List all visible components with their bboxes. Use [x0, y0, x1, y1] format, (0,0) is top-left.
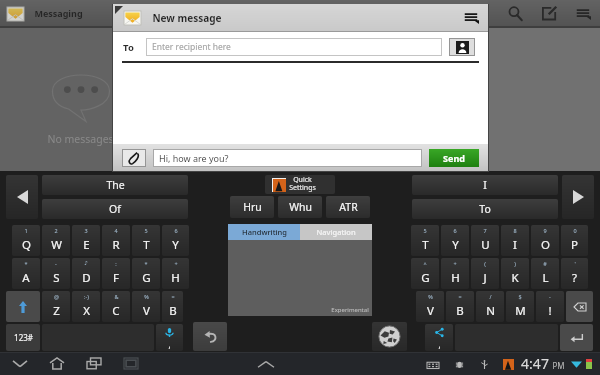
staticText: =: [458, 293, 462, 300]
button[interactable]: Quick: [265, 175, 335, 194]
button[interactable]: Home: [43, 352, 71, 375]
button[interactable]: Attach: [122, 149, 146, 167]
button[interactable]: I: [412, 175, 558, 195]
button[interactable]: ^: [411, 258, 439, 289]
staticText: +: [174, 260, 178, 267]
staticText: H: [451, 270, 460, 286]
button[interactable]: [560, 324, 593, 351]
button[interactable]: 9: [531, 225, 559, 256]
button[interactable]: *: [132, 258, 160, 289]
button[interactable]: Recents: [80, 352, 108, 375]
staticText: A: [22, 270, 30, 286]
staticText: 6: [453, 227, 457, 234]
button[interactable]: ): [501, 258, 529, 289]
staticText: 5: [144, 227, 148, 234]
button[interactable]: /: [476, 291, 504, 322]
staticText: ^: [423, 260, 427, 267]
button[interactable]: 1: [12, 225, 40, 256]
staticText: X: [83, 303, 90, 319]
staticText: D: [82, 270, 91, 286]
staticText: Y: [172, 237, 179, 253]
button[interactable]: Screenshot: [117, 352, 145, 375]
button[interactable]: Navigation: [300, 224, 372, 240]
button[interactable]: :: [102, 258, 130, 289]
staticText: Of: [109, 202, 121, 216]
button[interactable]: New message: [532, 0, 566, 26]
button[interactable]: 2: [42, 225, 70, 256]
button[interactable]: The: [42, 175, 188, 195]
button[interactable]: =: [446, 291, 474, 322]
staticText: +: [453, 260, 457, 267]
button[interactable]: +: [162, 258, 189, 289]
button[interactable]: To: [412, 199, 558, 219]
staticText: R: [112, 237, 120, 253]
button[interactable]: Language: [372, 322, 407, 351]
button[interactable]: 5: [132, 225, 160, 256]
button[interactable]: Undo: [193, 322, 227, 351]
staticText: Send: [443, 152, 465, 164]
button[interactable]: -: [42, 258, 70, 289]
button[interactable]: 6: [441, 225, 469, 256]
button[interactable]: More options: [566, 0, 600, 26]
button[interactable]: #: [531, 258, 559, 289]
button[interactable]: *: [12, 258, 40, 289]
button[interactable]: %: [416, 291, 444, 322]
button[interactable]: +: [441, 258, 469, 289]
staticText: W: [51, 237, 62, 253]
button[interactable]: Previous suggestions: [6, 175, 38, 219]
staticText: U: [481, 237, 490, 253]
button[interactable]: Handwriting: [228, 224, 300, 240]
staticText: :: [115, 260, 117, 267]
staticText: The: [106, 178, 125, 192]
button[interactable]: ': [561, 258, 588, 289]
button[interactable]: %: [132, 291, 160, 322]
button[interactable]: ATR: [326, 196, 370, 218]
button[interactable]: 7: [471, 225, 499, 256]
staticText: 5: [423, 227, 427, 234]
button[interactable]: More options: [454, 4, 488, 31]
button[interactable]: -: [536, 291, 564, 322]
button[interactable]: [566, 291, 593, 322]
button[interactable]: [6, 291, 40, 322]
staticText: 3: [84, 227, 88, 234]
staticText: To: [479, 202, 491, 216]
button[interactable]: ,: [156, 324, 183, 351]
staticText: Messaging: [34, 7, 83, 19]
button[interactable]: ,: [425, 324, 453, 351]
staticText: C: [112, 303, 120, 319]
button[interactable]: Of: [42, 199, 188, 219]
button[interactable]: 4: [102, 225, 130, 256]
button[interactable]: 123#: [6, 324, 40, 351]
button[interactable]: 0: [561, 225, 588, 256]
button[interactable]: $: [506, 291, 534, 322]
button[interactable]: ♪: [72, 258, 100, 289]
staticText: ': [574, 260, 576, 267]
staticText: I: [513, 237, 517, 253]
button[interactable]: More suggestions: [562, 175, 594, 219]
button[interactable]: (: [471, 258, 499, 289]
button[interactable]: :-): [72, 291, 100, 322]
button[interactable]: Search: [498, 0, 532, 26]
staticText: @: [54, 293, 59, 300]
button[interactable]: Enter recipient here: [146, 38, 442, 56]
button[interactable]: Hi, how are you?: [153, 149, 422, 167]
button[interactable]: Pick contact: [449, 38, 475, 56]
button[interactable]: =: [162, 291, 183, 322]
button[interactable]: &: [102, 291, 130, 322]
button[interactable]: 3: [72, 225, 100, 256]
button[interactable]: @: [42, 291, 70, 322]
button[interactable]: Hru: [230, 196, 274, 218]
button[interactable]: Back: [6, 352, 34, 375]
staticText: &: [114, 293, 119, 300]
staticText: *: [144, 260, 148, 267]
staticText: I: [483, 178, 487, 192]
staticText: 2: [54, 227, 58, 234]
button[interactable]: 8: [501, 225, 529, 256]
staticText: T: [422, 237, 429, 253]
button[interactable]: 6: [162, 225, 189, 256]
button[interactable]: Send: [429, 149, 479, 167]
button[interactable]: Whu: [278, 196, 322, 218]
button[interactable]: 5: [411, 225, 439, 256]
